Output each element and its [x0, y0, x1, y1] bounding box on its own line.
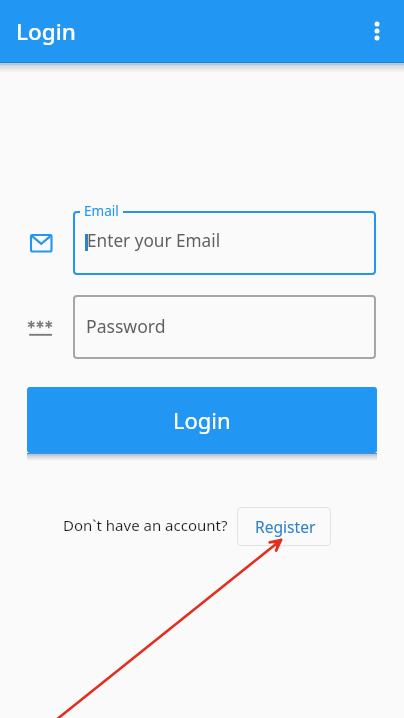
button[interactable]: Login	[27, 387, 377, 453]
button[interactable]: Password	[73, 295, 376, 359]
button[interactable]: Enter your Email	[73, 211, 376, 275]
staticText: Login	[16, 16, 76, 47]
staticText: Email	[84, 202, 119, 220]
staticText: Password	[86, 314, 166, 338]
staticText: Login	[173, 405, 231, 435]
button[interactable]: More options	[355, 9, 399, 53]
staticText: Register	[255, 516, 316, 537]
button[interactable]: Register	[237, 507, 331, 546]
staticText: Enter your Email	[87, 229, 221, 252]
staticText: Don`t have an account?	[63, 515, 228, 535]
